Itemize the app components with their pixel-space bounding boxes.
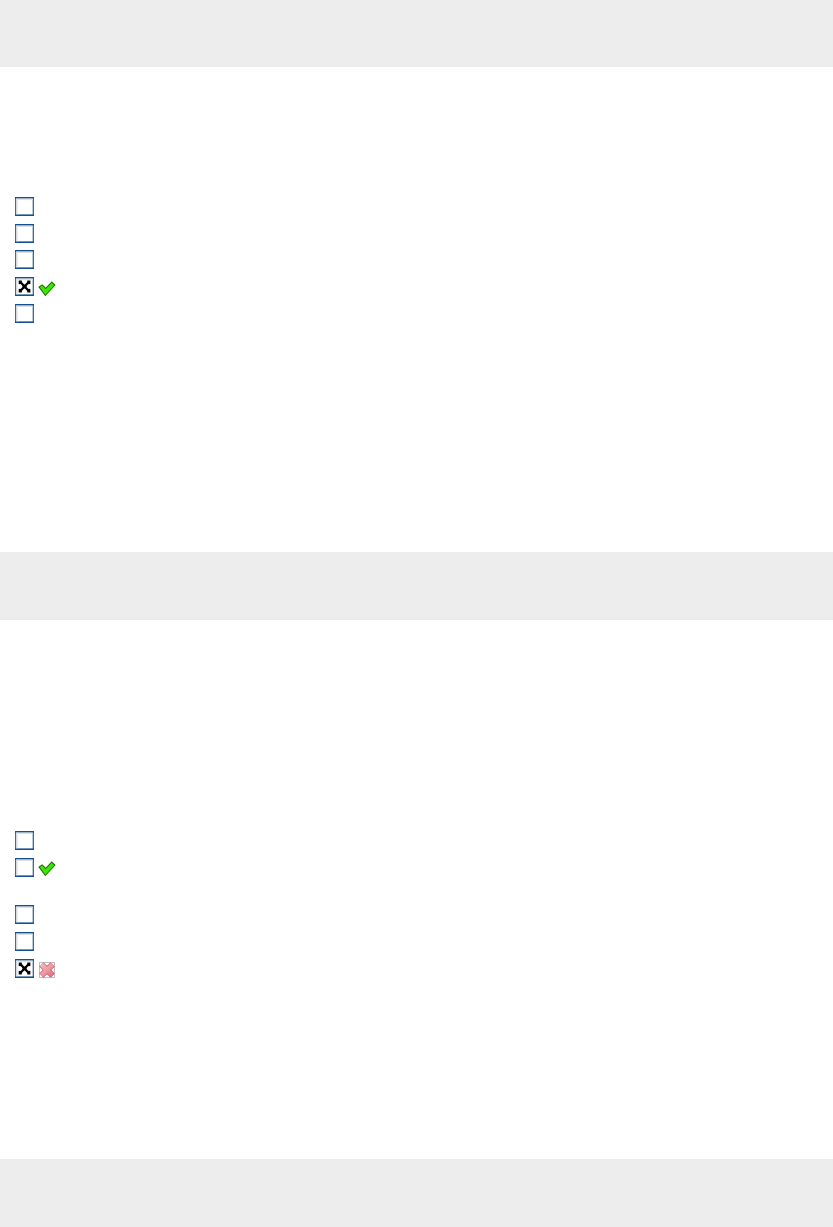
button[interactable]: Answer option xyxy=(15,858,34,877)
button[interactable]: Selected answer option xyxy=(15,959,34,978)
button[interactable]: Selected answer option xyxy=(15,277,34,296)
button[interactable]: Answer option xyxy=(15,304,34,323)
button[interactable]: Answer option xyxy=(15,831,34,850)
button[interactable]: Answer option xyxy=(15,932,34,951)
other: Wrong answer xyxy=(39,962,55,978)
button[interactable]: Answer option xyxy=(15,197,34,216)
other: Correct answer xyxy=(39,282,55,296)
button[interactable]: Answer option xyxy=(15,250,34,269)
button[interactable]: Answer option xyxy=(15,905,34,924)
button[interactable]: Answer option xyxy=(15,224,34,243)
other: Correct answer xyxy=(39,862,55,876)
